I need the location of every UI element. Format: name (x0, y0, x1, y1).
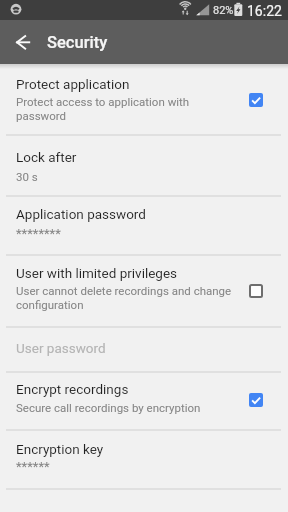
staticText: Security (47, 33, 108, 52)
button[interactable] (0, 430, 288, 489)
staticText: 30 s (16, 170, 38, 183)
staticText: Secure call recordings by encryption (16, 401, 201, 414)
button[interactable] (0, 196, 288, 255)
staticText: Encryption key (16, 441, 104, 457)
staticText: Lock after (16, 149, 77, 165)
button[interactable] (0, 135, 288, 196)
staticText: ******** (16, 226, 61, 241)
staticText: Encrypt recordings (16, 381, 129, 397)
staticText: Application password (16, 206, 146, 222)
button[interactable] (0, 327, 288, 372)
staticText: 82% (213, 4, 234, 17)
staticText: Protect application (16, 76, 130, 92)
staticText: 16:22 (247, 3, 282, 19)
button[interactable] (0, 255, 288, 328)
button[interactable] (0, 372, 288, 430)
staticText: ****** (16, 459, 50, 474)
button[interactable] (0, 64, 288, 135)
staticText: User with limited privileges (16, 265, 178, 281)
button[interactable] (6, 28, 36, 58)
staticText: User cannot delete recordings and change… (16, 284, 232, 312)
staticText: User password (16, 340, 106, 356)
staticText: Protect access to application with passw… (16, 95, 190, 123)
